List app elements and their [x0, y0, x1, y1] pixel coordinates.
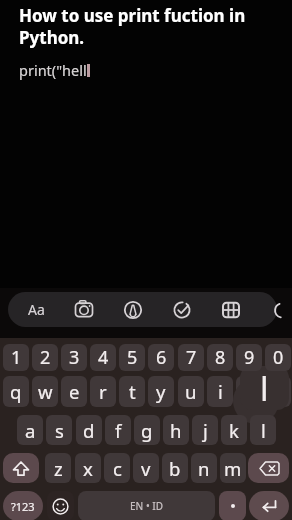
staticText: 8 — [215, 345, 226, 370]
button[interactable]: c — [104, 453, 130, 483]
staticText: l — [260, 366, 269, 410]
button[interactable]: v — [133, 453, 159, 483]
staticText: Aa — [28, 300, 45, 319]
button[interactable]: 7 — [178, 344, 204, 371]
button[interactable]: n — [191, 453, 217, 483]
button[interactable]: Aa — [19, 292, 53, 327]
button[interactable]: 3 — [61, 344, 87, 371]
staticText: m — [224, 456, 242, 481]
staticText: k — [229, 418, 239, 443]
button[interactable]: s — [46, 415, 72, 445]
button[interactable]: 0 — [265, 344, 291, 371]
staticText: 1 — [11, 345, 22, 370]
staticText: d — [83, 418, 95, 443]
staticText: 5 — [127, 345, 138, 370]
staticText: x — [83, 456, 93, 481]
staticText: 7 — [186, 345, 197, 370]
staticText: i — [218, 379, 223, 404]
button[interactable] — [245, 292, 279, 327]
button[interactable]: 4 — [90, 344, 116, 371]
button[interactable] — [249, 491, 289, 520]
button[interactable]: t — [119, 376, 145, 407]
staticText: f — [115, 418, 122, 443]
button[interactable] — [248, 453, 289, 483]
button[interactable]: i — [207, 376, 233, 407]
button[interactable]: e — [61, 376, 87, 407]
button[interactable]: j — [192, 415, 218, 445]
button[interactable]: u — [178, 376, 204, 407]
button[interactable] — [219, 491, 246, 520]
staticText: l — [261, 418, 266, 443]
button[interactable]: d — [76, 415, 102, 445]
button[interactable]: 1 — [3, 344, 29, 371]
staticText: b — [169, 456, 181, 481]
button[interactable]: EN • ID — [78, 491, 215, 520]
staticText: h — [170, 418, 182, 443]
button[interactable]: z — [45, 453, 71, 483]
staticText: e — [69, 379, 80, 404]
staticText: n — [198, 456, 210, 481]
staticText: ?123 — [11, 499, 35, 514]
staticText: 4 — [98, 345, 109, 370]
staticText: v — [141, 456, 151, 481]
button[interactable]: w — [32, 376, 58, 407]
button[interactable] — [165, 292, 199, 327]
staticText: u — [185, 379, 197, 404]
staticText: EN • ID — [130, 499, 164, 513]
button[interactable]: 8 — [207, 344, 233, 371]
button[interactable]: a — [17, 415, 43, 445]
staticText: t — [129, 379, 136, 404]
button[interactable]: 5 — [119, 344, 145, 371]
button[interactable]: ?123 — [3, 491, 43, 520]
button[interactable]: r — [90, 376, 116, 407]
button[interactable]: y — [148, 376, 174, 407]
staticText: 3 — [69, 345, 80, 370]
button[interactable] — [3, 453, 39, 483]
button[interactable]: g — [134, 415, 160, 445]
staticText: j — [203, 418, 208, 443]
button[interactable]: 6 — [148, 344, 174, 371]
button[interactable]: x — [75, 453, 101, 483]
staticText: 6 — [156, 345, 167, 370]
staticText: w — [38, 379, 53, 404]
staticText: 9 — [244, 345, 255, 370]
staticText: 0 — [273, 345, 284, 370]
staticText: c — [113, 456, 122, 481]
staticText: g — [141, 418, 153, 443]
button[interactable]: k — [221, 415, 247, 445]
button[interactable]: m — [220, 453, 246, 483]
button[interactable] — [116, 292, 150, 327]
staticText: z — [54, 456, 63, 481]
button[interactable] — [214, 292, 248, 327]
button[interactable]: q — [3, 376, 29, 407]
button[interactable]: f — [105, 415, 131, 445]
staticText: 2 — [40, 345, 51, 370]
staticText: print("hell — [19, 60, 87, 80]
button[interactable]: 2 — [32, 344, 58, 371]
button[interactable]: 9 — [236, 344, 262, 371]
button[interactable] — [47, 491, 74, 520]
staticText: r — [99, 379, 107, 404]
staticText: How to use print fuction in Python. — [19, 4, 274, 49]
staticText: q — [10, 379, 22, 404]
button[interactable] — [67, 292, 101, 327]
button[interactable]: p — [265, 376, 291, 407]
staticText: a — [25, 418, 36, 443]
staticText: s — [55, 418, 64, 443]
staticText: y — [156, 379, 166, 404]
button[interactable]: h — [163, 415, 189, 445]
button[interactable]: b — [162, 453, 188, 483]
button[interactable]: l — [250, 415, 276, 445]
